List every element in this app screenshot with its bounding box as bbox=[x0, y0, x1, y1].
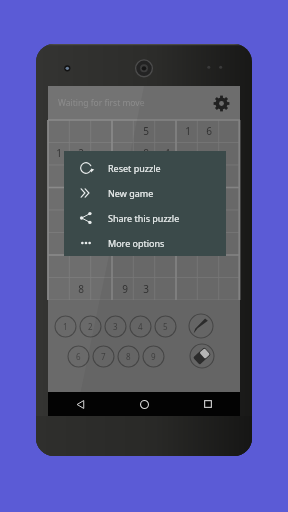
button[interactable] bbox=[114, 208, 135, 231]
button[interactable] bbox=[114, 254, 135, 277]
button[interactable] bbox=[92, 254, 114, 277]
button[interactable]: 9 bbox=[142, 345, 165, 368]
button[interactable] bbox=[48, 231, 70, 254]
button[interactable]: 5 bbox=[154, 315, 177, 338]
button[interactable]: 3 bbox=[135, 277, 156, 300]
button[interactable] bbox=[92, 164, 114, 186]
button[interactable] bbox=[219, 164, 240, 186]
button[interactable]: 6 bbox=[67, 345, 90, 368]
button[interactable] bbox=[198, 277, 219, 300]
staticText: 5 bbox=[143, 124, 149, 138]
button[interactable] bbox=[92, 277, 114, 300]
button[interactable] bbox=[70, 120, 92, 142]
staticText: 1 bbox=[185, 124, 191, 138]
button[interactable] bbox=[92, 186, 114, 208]
button[interactable] bbox=[48, 208, 70, 231]
button[interactable]: 1 bbox=[177, 120, 198, 142]
button[interactable] bbox=[70, 208, 92, 231]
button[interactable] bbox=[156, 120, 177, 142]
button[interactable] bbox=[48, 120, 70, 142]
button[interactable]: Share this puzzle bbox=[64, 205, 226, 230]
button[interactable] bbox=[219, 186, 240, 208]
button[interactable] bbox=[177, 277, 198, 300]
button[interactable] bbox=[114, 142, 135, 164]
button[interactable] bbox=[135, 186, 156, 208]
button[interactable] bbox=[48, 277, 70, 300]
button[interactable] bbox=[70, 186, 92, 208]
button[interactable]: 2 bbox=[70, 142, 92, 164]
button[interactable]: 5 bbox=[135, 120, 156, 142]
button[interactable] bbox=[198, 142, 219, 164]
button[interactable]: New game bbox=[64, 180, 226, 205]
button[interactable]: 9 bbox=[70, 164, 92, 186]
staticText: 7 bbox=[101, 351, 106, 362]
button[interactable]: 4 bbox=[156, 142, 177, 164]
button[interactable] bbox=[177, 208, 198, 231]
button[interactable]: 4 bbox=[129, 315, 152, 338]
button[interactable]: 1 bbox=[54, 315, 77, 338]
button[interactable] bbox=[219, 254, 240, 277]
button[interactable]: 2 bbox=[79, 315, 102, 338]
staticText: 8 bbox=[78, 282, 84, 296]
button[interactable] bbox=[177, 254, 198, 277]
button[interactable] bbox=[219, 231, 240, 254]
button[interactable] bbox=[92, 208, 114, 231]
button[interactable] bbox=[219, 120, 240, 142]
button[interactable] bbox=[114, 164, 135, 186]
button[interactable] bbox=[135, 254, 156, 277]
button[interactable]: 9 bbox=[114, 277, 135, 300]
button[interactable] bbox=[70, 231, 92, 254]
button[interactable] bbox=[156, 277, 177, 300]
button[interactable]: 1 bbox=[48, 142, 70, 164]
button[interactable]: Erase bbox=[189, 343, 215, 369]
button[interactable]: Recent apps bbox=[176, 392, 240, 416]
button[interactable]: 8 bbox=[117, 345, 140, 368]
button[interactable] bbox=[92, 142, 114, 164]
button[interactable] bbox=[48, 186, 70, 208]
button[interactable] bbox=[114, 120, 135, 142]
button[interactable] bbox=[219, 277, 240, 300]
button[interactable] bbox=[156, 164, 177, 186]
button[interactable] bbox=[219, 208, 240, 231]
button[interactable]: 6 bbox=[198, 120, 219, 142]
staticText: Waiting for first move bbox=[58, 97, 145, 109]
button[interactable] bbox=[48, 164, 70, 186]
button[interactable] bbox=[70, 254, 92, 277]
staticText: 8 bbox=[126, 351, 131, 362]
button[interactable]: Back bbox=[48, 392, 112, 416]
staticText: 9 bbox=[151, 351, 156, 362]
button[interactable] bbox=[135, 231, 156, 254]
staticText: 4 bbox=[138, 321, 143, 332]
button[interactable]: Reset puzzle bbox=[64, 155, 226, 180]
button[interactable] bbox=[92, 120, 114, 142]
button[interactable] bbox=[135, 164, 156, 186]
button[interactable]: 8 bbox=[135, 142, 156, 164]
button[interactable] bbox=[48, 254, 70, 277]
button[interactable]: More options bbox=[64, 230, 226, 255]
button[interactable] bbox=[219, 142, 240, 164]
button[interactable]: Settings bbox=[210, 92, 232, 114]
button[interactable] bbox=[177, 142, 198, 164]
button[interactable] bbox=[156, 254, 177, 277]
button[interactable] bbox=[156, 231, 177, 254]
button[interactable]: 8 bbox=[70, 277, 92, 300]
staticText: 3 bbox=[143, 282, 149, 296]
button[interactable] bbox=[156, 208, 177, 231]
button[interactable] bbox=[198, 254, 219, 277]
button[interactable]: Pencil notes bbox=[188, 313, 214, 339]
button[interactable] bbox=[135, 208, 156, 231]
button[interactable]: Home bbox=[112, 392, 176, 416]
button[interactable] bbox=[92, 231, 114, 254]
button[interactable]: 7 bbox=[92, 345, 115, 368]
button[interactable] bbox=[114, 186, 135, 208]
button[interactable] bbox=[114, 231, 135, 254]
button[interactable]: 3 bbox=[104, 315, 127, 338]
